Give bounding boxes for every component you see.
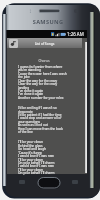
staticText: I would lose if I was new (18, 164, 54, 168)
staticText: I've done it again (18, 92, 44, 96)
staticText: desperate (18, 110, 33, 114)
staticText: Clear the way for the crazy (18, 79, 58, 83)
staticText: List of Songs (7, 41, 82, 45)
button[interactable]: Home (38, 178, 60, 189)
staticText: On your behalf I'll charm (18, 171, 55, 175)
staticText: I've done it again (18, 89, 44, 93)
staticText: landing (18, 86, 30, 90)
staticText: As soon as I find out (18, 123, 48, 127)
staticText: I'd be patient if I had the time (18, 113, 62, 117)
staticText: I guess its funnier from where (18, 65, 63, 69)
staticText: Cause then over here I was crash (18, 72, 67, 76)
staticText: I'll be your clown (18, 140, 43, 144)
button[interactable]: List of Songs (7, 38, 82, 48)
staticText: Clear the way for the crazy (18, 82, 58, 86)
staticText: I'd be smiling if I wasn't so (18, 106, 57, 110)
staticText: SAMSUNG (26, 18, 70, 26)
staticText: Chorus (18, 58, 70, 62)
staticText: 'Cause it's funny (18, 151, 42, 155)
staticText: I'll be your clown (18, 168, 43, 172)
staticText: Another number for your rolex (18, 96, 64, 100)
staticText: I would lose if I was new (18, 154, 54, 158)
staticText: Go head and laugh (18, 147, 47, 151)
staticText: I could stop and answer all of (18, 116, 62, 120)
staticText: you're standing (18, 68, 41, 72)
staticText: On your behalf I'll charm (18, 161, 55, 165)
staticText: Behind the glass (18, 144, 43, 148)
staticText: your questions (18, 120, 40, 124)
staticText: 1:26 AM (67, 31, 84, 37)
staticText: of the line (18, 130, 33, 134)
staticText: I'll be your clown (18, 158, 43, 162)
staticText: How I can move from the back (18, 127, 63, 131)
staticText: the joke (18, 75, 30, 79)
